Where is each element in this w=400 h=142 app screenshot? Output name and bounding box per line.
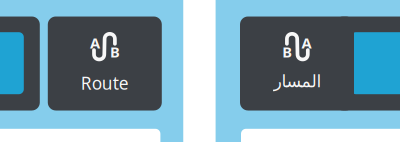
staticText: B	[282, 42, 292, 62]
button[interactable]: A	[48, 16, 162, 110]
staticText: Route	[81, 71, 129, 94]
button[interactable]: A	[240, 16, 354, 110]
staticText: المسار	[273, 71, 321, 91]
staticText: A	[90, 33, 100, 53]
staticText: B	[110, 42, 120, 62]
staticText: A	[302, 33, 312, 53]
button[interactable]: Colour	[0, 16, 40, 110]
button[interactable]: Colour	[335, 16, 400, 110]
